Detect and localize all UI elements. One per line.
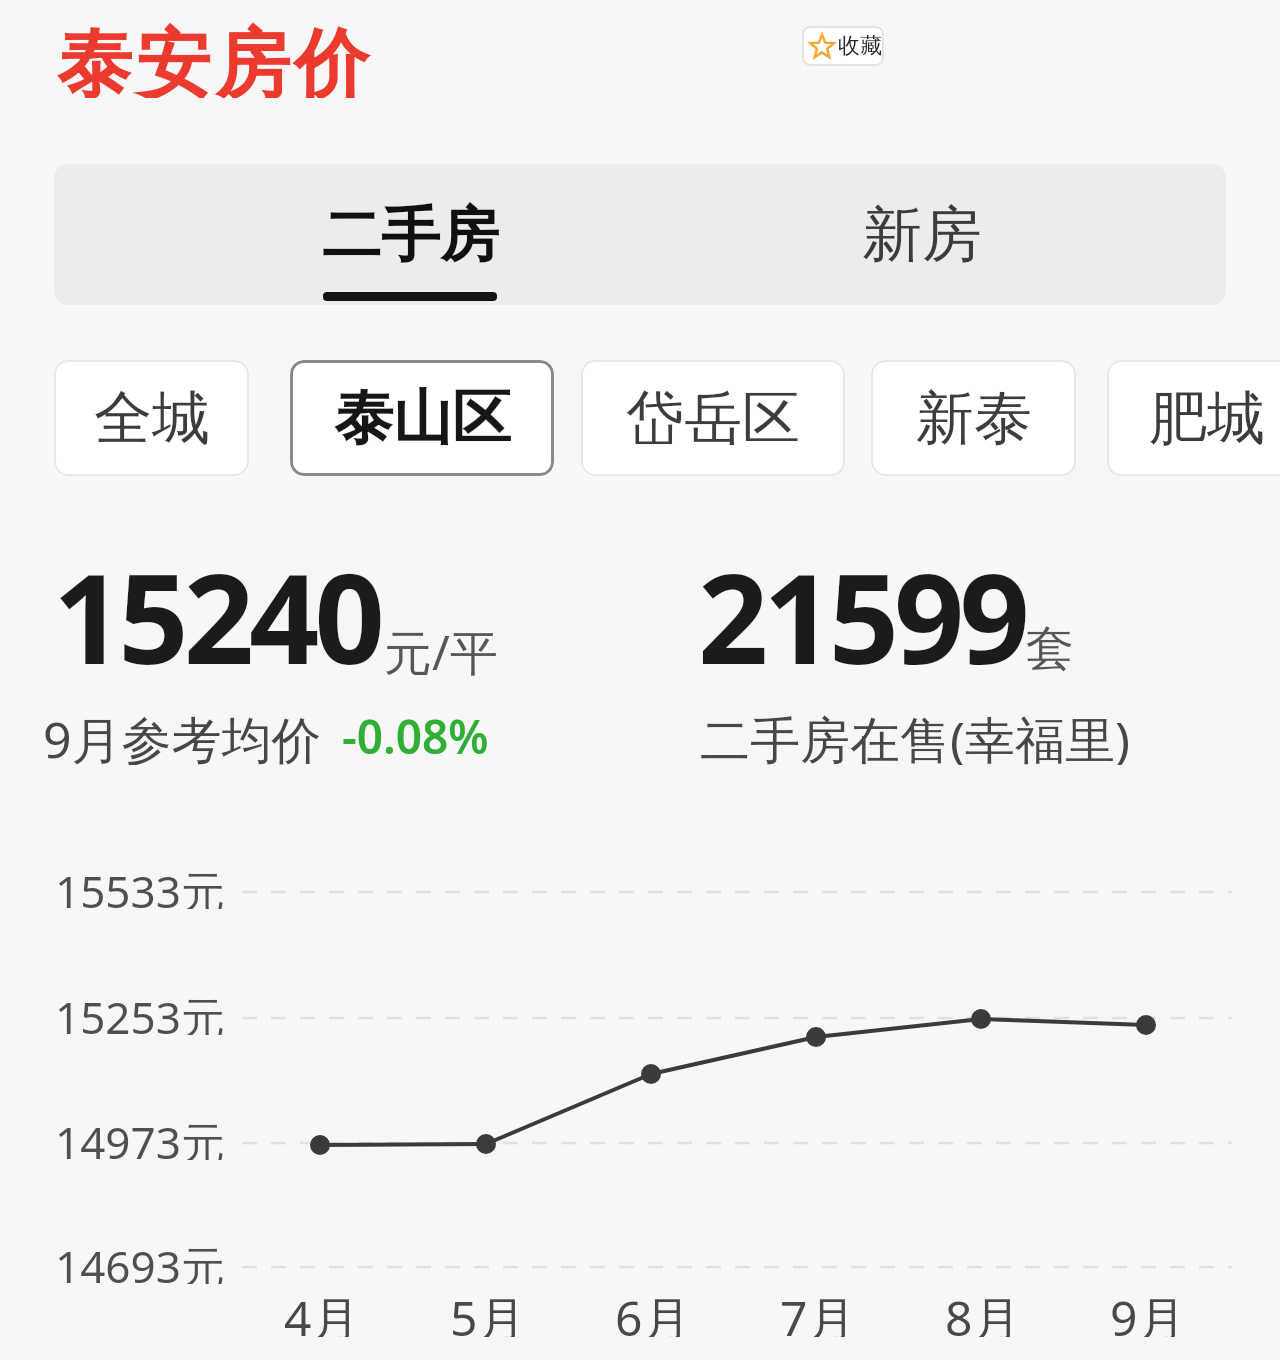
staticText: 7月 xyxy=(780,1285,856,1337)
button[interactable]: 岱岳区 xyxy=(581,360,845,476)
staticText: 全城 xyxy=(94,382,210,455)
staticText: 15533元 xyxy=(55,861,225,909)
staticText: 二手房 xyxy=(322,198,499,272)
staticText: 4月 xyxy=(284,1285,360,1337)
staticText: 15253元 xyxy=(55,987,225,1035)
button[interactable]: 二手房 xyxy=(54,164,640,305)
staticText: 套 xyxy=(1026,619,1074,679)
staticText: 收藏 xyxy=(838,32,882,60)
staticText: 新房 xyxy=(862,197,982,273)
staticText: 5月 xyxy=(450,1285,526,1337)
staticText: 8月 xyxy=(945,1285,1021,1337)
staticText: 15240 xyxy=(53,533,380,701)
staticText: 肥城 xyxy=(1149,382,1265,455)
button[interactable]: 新泰 xyxy=(871,360,1076,476)
button[interactable]: 泰山区 xyxy=(290,360,554,476)
button[interactable]: 肥城 xyxy=(1107,360,1280,476)
button[interactable]: 全城 xyxy=(54,360,249,476)
staticText: 14973元 xyxy=(55,1112,225,1160)
button[interactable]: 收藏 xyxy=(802,26,884,66)
staticText: 泰山区 xyxy=(334,381,511,455)
staticText: 9月 xyxy=(1110,1285,1186,1337)
staticText: 新泰 xyxy=(916,382,1032,455)
button[interactable]: 新房 xyxy=(640,164,1226,305)
staticText: 二手房在售(幸福里) xyxy=(700,705,1130,765)
staticText: 岱岳区 xyxy=(626,382,800,455)
staticText: 泰安房价 xyxy=(55,18,371,98)
staticText: 元/平 xyxy=(384,619,498,679)
staticText: -0.08% xyxy=(342,705,489,765)
staticText: 14693元 xyxy=(55,1236,225,1284)
staticText: 6月 xyxy=(615,1285,691,1337)
staticText: 9月参考均价 xyxy=(43,705,322,765)
staticText: 21599 xyxy=(698,533,1025,701)
